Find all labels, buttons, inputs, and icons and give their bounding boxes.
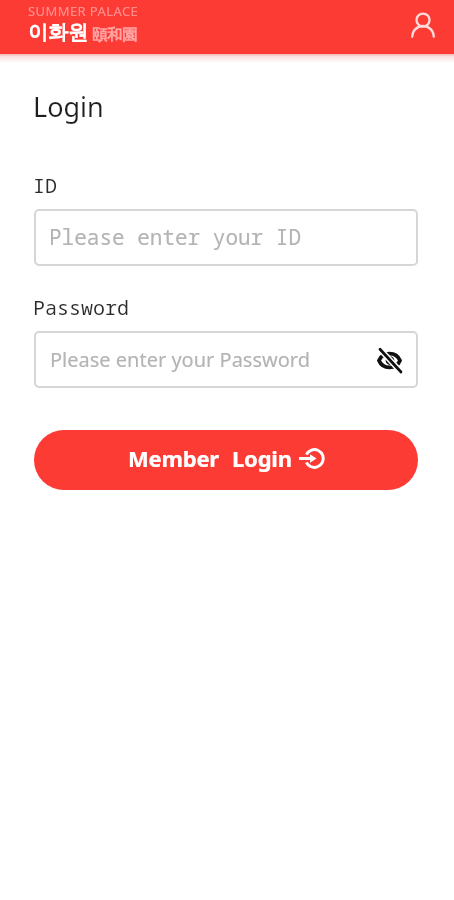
button[interactable]: Please enter your ID — [34, 209, 418, 266]
staticText: Password — [33, 294, 129, 321]
staticText: SUMMER PALACE — [28, 2, 139, 20]
staticText: Please enter your Password — [50, 346, 310, 373]
staticText: ID — [33, 172, 57, 199]
button[interactable]: Member — [34, 430, 418, 490]
staticText: 이화원 — [28, 20, 88, 45]
staticText: Login — [33, 88, 104, 125]
button[interactable]: Account — [405, 8, 441, 44]
staticText: Member — [128, 443, 220, 473]
staticText: Please enter your ID — [49, 223, 301, 252]
staticText: 頤和園 — [92, 26, 137, 45]
button[interactable]: Please enter your Password — [34, 331, 418, 388]
button[interactable]: Show password — [377, 342, 413, 378]
staticText: Login — [232, 443, 292, 473]
